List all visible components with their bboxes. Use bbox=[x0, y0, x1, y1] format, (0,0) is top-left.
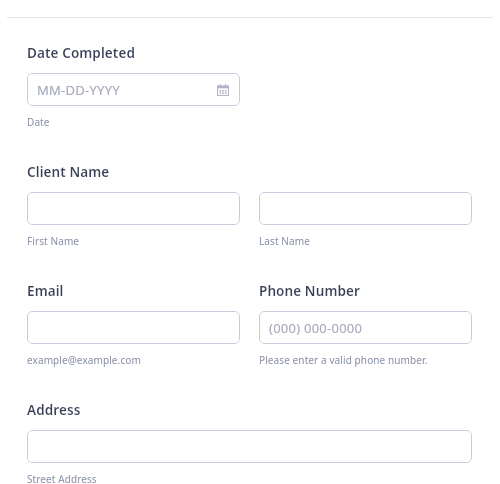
staticText: Email bbox=[27, 282, 64, 300]
button[interactable]: Open calendar picker bbox=[215, 82, 231, 98]
button[interactable]: Address bbox=[27, 430, 472, 463]
button[interactable]: Last Name bbox=[259, 192, 472, 225]
button[interactable]: Email bbox=[27, 311, 240, 344]
staticText: First Name bbox=[27, 234, 80, 248]
staticText: Please enter a valid phone number. bbox=[259, 353, 428, 367]
staticText: Phone Number bbox=[259, 282, 360, 300]
staticText: MM-DD-YYYY bbox=[37, 81, 120, 99]
staticText: Last Name bbox=[259, 234, 310, 248]
staticText: Date bbox=[27, 115, 50, 129]
staticText: Street Address bbox=[27, 472, 97, 484]
button[interactable]: Date Completed bbox=[27, 73, 240, 106]
staticText: example@example.com bbox=[27, 353, 141, 367]
staticText: Date Completed bbox=[27, 44, 135, 62]
button[interactable]: Client Name bbox=[27, 192, 240, 225]
button[interactable]: Phone Number bbox=[259, 311, 472, 344]
staticText: Address bbox=[27, 401, 81, 419]
staticText: (000) 000-0000 bbox=[269, 319, 363, 337]
staticText: Client Name bbox=[27, 163, 110, 181]
